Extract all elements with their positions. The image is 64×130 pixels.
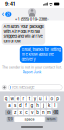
staticText: return bbox=[47, 117, 56, 121]
staticText: p bbox=[56, 96, 59, 101]
staticText: ⌫ bbox=[53, 110, 58, 115]
button[interactable]: space bbox=[14, 117, 45, 122]
staticText: f bbox=[25, 103, 27, 108]
staticText: Text Message bbox=[11, 85, 34, 90]
staticText: c bbox=[25, 110, 27, 115]
staticText: j bbox=[43, 103, 44, 108]
button[interactable]: o bbox=[49, 96, 54, 101]
button[interactable]: ⌫ bbox=[52, 110, 59, 115]
staticText: i bbox=[46, 96, 47, 101]
button[interactable]: h bbox=[35, 103, 40, 108]
button[interactable]: a bbox=[7, 103, 12, 108]
button[interactable]: c bbox=[24, 110, 29, 115]
button[interactable]: Report Junk bbox=[22, 70, 41, 74]
button[interactable]: t bbox=[27, 96, 32, 101]
button[interactable]: z bbox=[12, 110, 17, 115]
button[interactable]: m bbox=[46, 110, 52, 115]
staticText: m bbox=[47, 110, 51, 115]
button[interactable]: g bbox=[29, 103, 34, 108]
staticText: Amazon: Your package with AirPods Pro ha… bbox=[3, 24, 43, 44]
staticText: a bbox=[8, 103, 10, 108]
button[interactable]: ⇧ bbox=[5, 110, 12, 115]
staticText: 123 bbox=[8, 117, 13, 121]
button[interactable]: j bbox=[41, 103, 46, 108]
staticText: z bbox=[14, 110, 16, 115]
staticText: r bbox=[22, 96, 24, 101]
staticText: space bbox=[24, 117, 34, 121]
staticText: u bbox=[39, 96, 42, 101]
staticText: g bbox=[30, 103, 33, 108]
staticText: t bbox=[29, 96, 30, 101]
button[interactable]: d bbox=[18, 103, 23, 108]
button[interactable]: Back to Messages bbox=[0, 10, 11, 18]
button[interactable]: w bbox=[9, 96, 15, 101]
button[interactable]: Add attachment bbox=[2, 85, 7, 90]
button[interactable]: 123 bbox=[7, 117, 14, 122]
button[interactable]: r bbox=[21, 96, 26, 101]
staticText: +1 (555) 019-2388 bbox=[15, 17, 47, 21]
staticText: q bbox=[5, 96, 8, 101]
button[interactable]: k bbox=[46, 103, 52, 108]
button[interactable]: x bbox=[18, 110, 23, 115]
button[interactable]: q bbox=[4, 96, 9, 101]
staticText: › bbox=[47, 17, 49, 21]
button[interactable]: return bbox=[45, 117, 57, 122]
button[interactable]: i bbox=[44, 96, 49, 101]
button[interactable]: b bbox=[35, 110, 40, 115]
staticText: o bbox=[50, 96, 53, 101]
staticText: k bbox=[48, 103, 50, 108]
button[interactable]: u bbox=[38, 96, 43, 101]
staticText: Report Junk bbox=[22, 70, 41, 74]
staticText: y bbox=[34, 96, 36, 101]
staticText: 21 bbox=[6, 12, 10, 16]
staticText: ⇧ bbox=[6, 110, 10, 115]
staticText: b bbox=[36, 110, 39, 115]
staticText: s bbox=[14, 103, 16, 108]
staticText: e bbox=[17, 96, 19, 101]
staticText: h bbox=[36, 103, 39, 108]
button[interactable]: s bbox=[12, 103, 17, 108]
staticText: Great, thanks for letting me know about … bbox=[22, 47, 61, 62]
staticText: x bbox=[20, 110, 22, 115]
staticText: 9:41 bbox=[5, 1, 15, 7]
button[interactable]: n bbox=[41, 110, 46, 115]
button[interactable]: Text Message field bbox=[8, 85, 62, 90]
staticText: The sender is not in your contact list. bbox=[2, 65, 62, 69]
staticText: d bbox=[19, 103, 22, 108]
button[interactable]: f bbox=[24, 103, 29, 108]
button[interactable]: l bbox=[52, 103, 57, 108]
button[interactable]: p bbox=[55, 96, 60, 101]
button[interactable]: e bbox=[15, 96, 20, 101]
staticText: w bbox=[10, 96, 13, 101]
button[interactable]: v bbox=[29, 110, 34, 115]
staticText: n bbox=[42, 110, 45, 115]
staticText: l bbox=[54, 103, 55, 108]
staticText: v bbox=[31, 110, 33, 115]
button[interactable]: y bbox=[32, 96, 37, 101]
